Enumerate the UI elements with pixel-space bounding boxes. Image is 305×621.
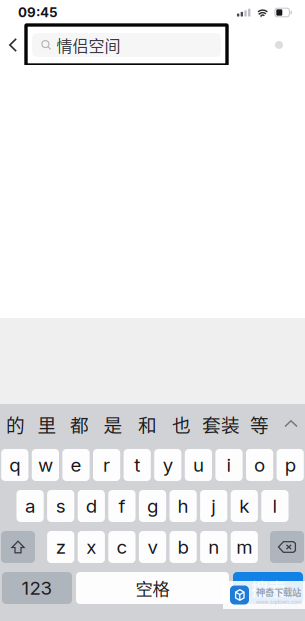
button[interactable]: 套装 <box>198 404 244 444</box>
staticText: 和 <box>138 410 157 437</box>
button[interactable]: 里 <box>31 404 63 444</box>
button[interactable]: x <box>78 531 105 563</box>
staticText: o <box>254 454 265 476</box>
staticText: 空格 <box>135 575 169 601</box>
button[interactable]: n <box>200 531 227 563</box>
staticText: m <box>236 536 252 558</box>
button[interactable]: Shift <box>1 531 35 563</box>
staticText: b <box>178 536 189 558</box>
button[interactable]: Back <box>0 25 26 65</box>
button[interactable]: 空格 <box>76 572 229 604</box>
staticText: 123 <box>21 577 52 599</box>
button[interactable]: h <box>169 490 197 522</box>
button[interactable]: m <box>231 531 258 563</box>
staticText: 情侣空间 <box>57 33 121 57</box>
staticText: j <box>211 495 216 517</box>
button[interactable]: 等 <box>244 404 275 444</box>
button[interactable]: g <box>139 490 166 522</box>
button[interactable]: d <box>78 490 105 522</box>
button[interactable]: u <box>185 449 212 481</box>
staticText: p <box>285 454 296 476</box>
button[interactable]: j <box>200 490 227 522</box>
button[interactable]: More candidates <box>277 404 305 444</box>
button[interactable]: e <box>62 449 90 481</box>
staticText: l <box>272 495 277 517</box>
staticText: n <box>208 536 219 558</box>
staticText: www.sqdown.com <box>256 598 302 605</box>
staticText: 等 <box>250 410 269 437</box>
button[interactable]: w <box>32 449 59 481</box>
button[interactable]: 也 <box>165 404 198 444</box>
staticText: 神奇下载站 <box>256 585 301 598</box>
staticText: u <box>193 454 204 476</box>
button[interactable]: c <box>108 531 135 563</box>
staticText: d <box>86 495 97 517</box>
button[interactable]: s <box>47 490 74 522</box>
button[interactable]: p <box>277 449 304 481</box>
staticText: 搜索 <box>251 575 285 601</box>
button[interactable]: z <box>47 531 74 563</box>
button[interactable]: 123 <box>2 572 72 604</box>
button[interactable]: Delete <box>270 531 304 563</box>
button[interactable]: 的 <box>0 404 31 444</box>
button[interactable]: k <box>231 490 258 522</box>
button[interactable]: v <box>139 531 166 563</box>
staticText: 也 <box>172 410 191 437</box>
button[interactable]: o <box>246 449 273 481</box>
button[interactable]: t <box>124 449 151 481</box>
staticText: f <box>118 495 125 517</box>
button[interactable]: 情侣空间 <box>26 25 227 65</box>
button[interactable]: b <box>169 531 197 563</box>
staticText: k <box>239 495 249 517</box>
button[interactable]: q <box>1 449 28 481</box>
button[interactable]: 是 <box>96 404 130 444</box>
staticText: a <box>25 495 35 517</box>
staticText: q <box>9 454 20 476</box>
button[interactable]: a <box>16 490 44 522</box>
staticText: 是 <box>103 410 122 437</box>
staticText: y <box>163 454 173 476</box>
staticText: 套装 <box>202 410 240 437</box>
staticText: x <box>86 536 96 558</box>
staticText: v <box>147 536 157 558</box>
button[interactable]: y <box>154 449 181 481</box>
staticText: r <box>103 454 110 476</box>
button[interactable]: i <box>215 449 243 481</box>
button[interactable]: r <box>93 449 120 481</box>
staticText: z <box>56 536 66 558</box>
button[interactable]: l <box>261 490 288 522</box>
staticText: g <box>147 495 158 517</box>
staticText: s <box>56 495 66 517</box>
staticText: h <box>178 495 189 517</box>
staticText: 的 <box>6 410 25 437</box>
staticText: 09:45 <box>18 4 58 20</box>
staticText: c <box>116 536 127 558</box>
staticText: t <box>134 454 140 476</box>
button[interactable]: 搜索 <box>233 572 303 604</box>
staticText: e <box>70 454 81 476</box>
staticText: 里 <box>37 410 56 437</box>
button[interactable]: f <box>108 490 135 522</box>
button[interactable]: 和 <box>130 404 165 444</box>
staticText: 都 <box>70 410 89 437</box>
staticText: i <box>226 454 231 476</box>
button[interactable]: 都 <box>63 404 96 444</box>
staticText: w <box>38 454 53 476</box>
button[interactable]: More <box>266 25 292 65</box>
